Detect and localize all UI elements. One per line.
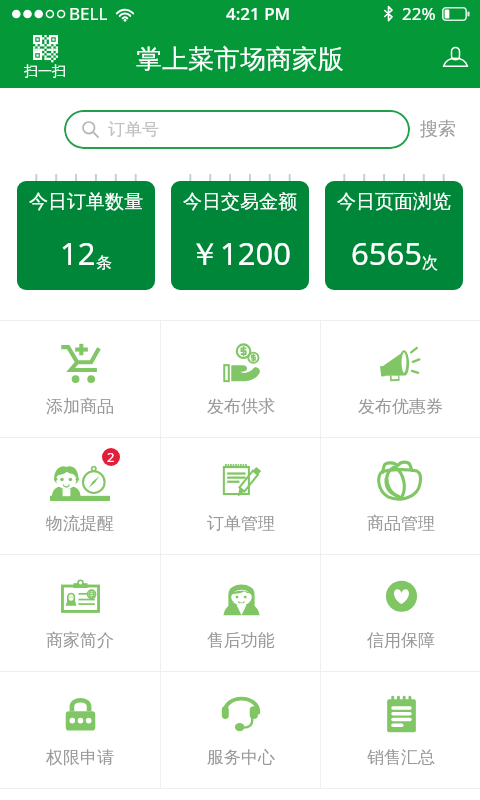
button[interactable]: 发布优惠券 [321,321,480,437]
staticText: 订单号 [108,119,159,140]
button[interactable]: 售后功能 [161,555,320,671]
staticText: 22% [402,2,436,25]
staticText: 发布供求 [207,396,275,417]
button[interactable]: 扫一扫 [22,33,68,83]
staticText: 今日订单数量 [29,190,143,214]
button[interactable]: 服务中心 [161,672,320,788]
staticText: 添加商品 [46,396,114,417]
staticText: 订单管理 [207,513,275,534]
staticText: 掌上菜市场商家版 [136,43,344,76]
staticText: 发布优惠券 [358,396,443,417]
button[interactable]: 权限申请 [0,672,160,788]
button[interactable]: 商品管理 [321,438,480,554]
staticText: 条 [96,253,112,273]
button[interactable]: 商家简介 [0,555,160,671]
staticText: 次 [422,253,438,273]
staticText: BELL [69,2,108,25]
staticText: 2 [107,448,115,466]
staticText: 销售汇总 [367,747,435,768]
staticText: 4:21 PM [226,2,291,25]
button[interactable]: 添加商品 [0,321,160,437]
staticText: 今日交易金额 [183,190,297,214]
staticText: 售后功能 [207,630,275,651]
button[interactable]: 搜索 [418,112,458,147]
staticText: 今日页面浏览 [337,190,451,214]
staticText: 商家简介 [46,630,114,651]
button[interactable]: 销售汇总 [321,672,480,788]
staticText: 6565 [351,232,422,274]
staticText: ￥1200 [189,232,291,274]
button[interactable]: 发布供求 [161,321,320,437]
staticText: 扫一扫 [24,63,66,81]
staticText: 商品管理 [367,513,435,534]
staticText: 12 [60,232,96,274]
staticText: 物流提醒 [46,513,114,534]
button[interactable]: 订单号 [64,110,410,149]
button[interactable]: 今日订单数量 [17,181,155,290]
button[interactable]: Profile [434,37,476,79]
staticText: 信用保障 [367,630,435,651]
button[interactable]: 信用保障 [321,555,480,671]
staticText: 搜索 [420,118,456,141]
button[interactable]: 订单管理 [161,438,320,554]
button[interactable]: 今日交易金额 [171,181,309,290]
staticText: 权限申请 [46,747,114,768]
button[interactable]: 今日页面浏览 [325,181,463,290]
staticText: 服务中心 [207,747,275,768]
button[interactable]: 2 [0,438,160,554]
